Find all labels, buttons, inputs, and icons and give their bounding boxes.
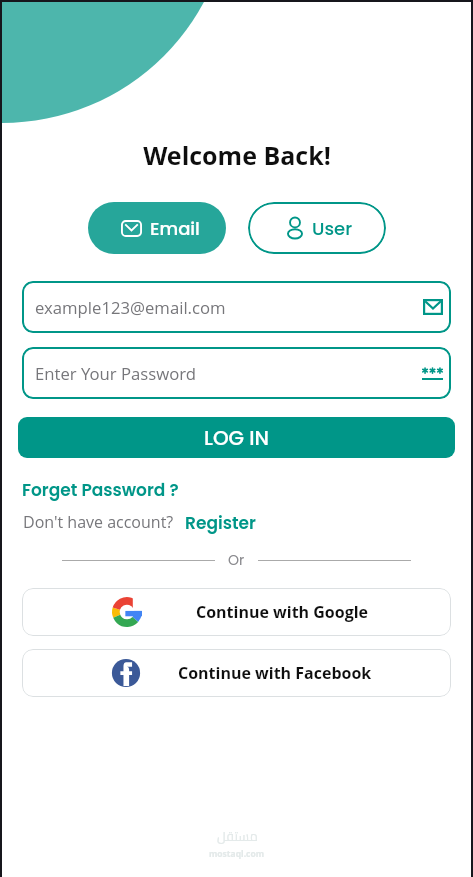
button[interactable]: Continue with Facebook (22, 649, 451, 697)
other: Password (422, 363, 443, 383)
staticText: LOG IN (204, 424, 269, 452)
staticText: mostaql.com (209, 848, 265, 860)
button[interactable]: Enter Your Password (22, 347, 451, 399)
button[interactable]: User (248, 202, 386, 254)
staticText: Continue with Google (196, 601, 369, 623)
staticText: User (312, 216, 353, 241)
staticText: Continue with Facebook (178, 662, 372, 684)
button[interactable]: Email (88, 202, 226, 254)
button[interactable]: Register (185, 511, 256, 535)
staticText: Welcome Back! (143, 138, 331, 172)
button[interactable]: example123@email.com (22, 281, 451, 333)
staticText: Email (150, 216, 200, 241)
staticText: Enter Your Password (35, 362, 422, 385)
staticText: Register (185, 511, 256, 535)
button[interactable]: LOG IN (18, 417, 455, 458)
staticText: example123@email.com (35, 296, 423, 319)
staticText: مستقل (217, 824, 258, 848)
staticText: Or (228, 550, 245, 570)
button[interactable]: Continue with Google (22, 588, 451, 636)
staticText: Forget Password ? (22, 478, 179, 502)
button[interactable]: Forget Password ? (22, 478, 179, 502)
other: Email (423, 299, 443, 315)
staticText: Don't have account? (23, 511, 174, 533)
